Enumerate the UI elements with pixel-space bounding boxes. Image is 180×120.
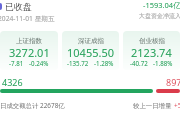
staticText: 日成交额总计 22678亿 [0,101,65,110]
staticText: 10455.50 [67,45,114,60]
staticText: 4326 [2,76,23,88]
staticText: 上证指数 [16,37,42,45]
staticText: 大盘资金净流入 [139,12,180,20]
staticText: -1.88% [153,59,173,67]
staticText: -7.81 [9,59,24,67]
staticText: -135.72 [67,59,89,67]
staticText: 897 [166,76,180,88]
staticText: 2123.74 [131,45,172,60]
button[interactable]: 深证成指 [62,31,119,70]
staticText: +5 [174,101,180,110]
staticText: 3272.01 [9,45,50,60]
other: Market status [0,3,2,10]
staticText: -1.28% [94,59,114,67]
staticText: 2024-11-01 星期五 [0,14,55,23]
staticText: -0.24% [29,59,49,67]
button[interactable]: 创业板指 [123,31,180,70]
staticText: 已收盘 [5,1,32,12]
staticText: 较上一日增量 [133,101,174,110]
staticText: -40.72 [130,59,148,67]
button[interactable]: Market status [0,1,32,12]
staticText: 深证成指 [78,37,104,45]
button[interactable]: 上证指数 [0,31,58,70]
staticText: -1593.04亿 [143,0,180,10]
staticText: 创业板指 [139,37,165,45]
